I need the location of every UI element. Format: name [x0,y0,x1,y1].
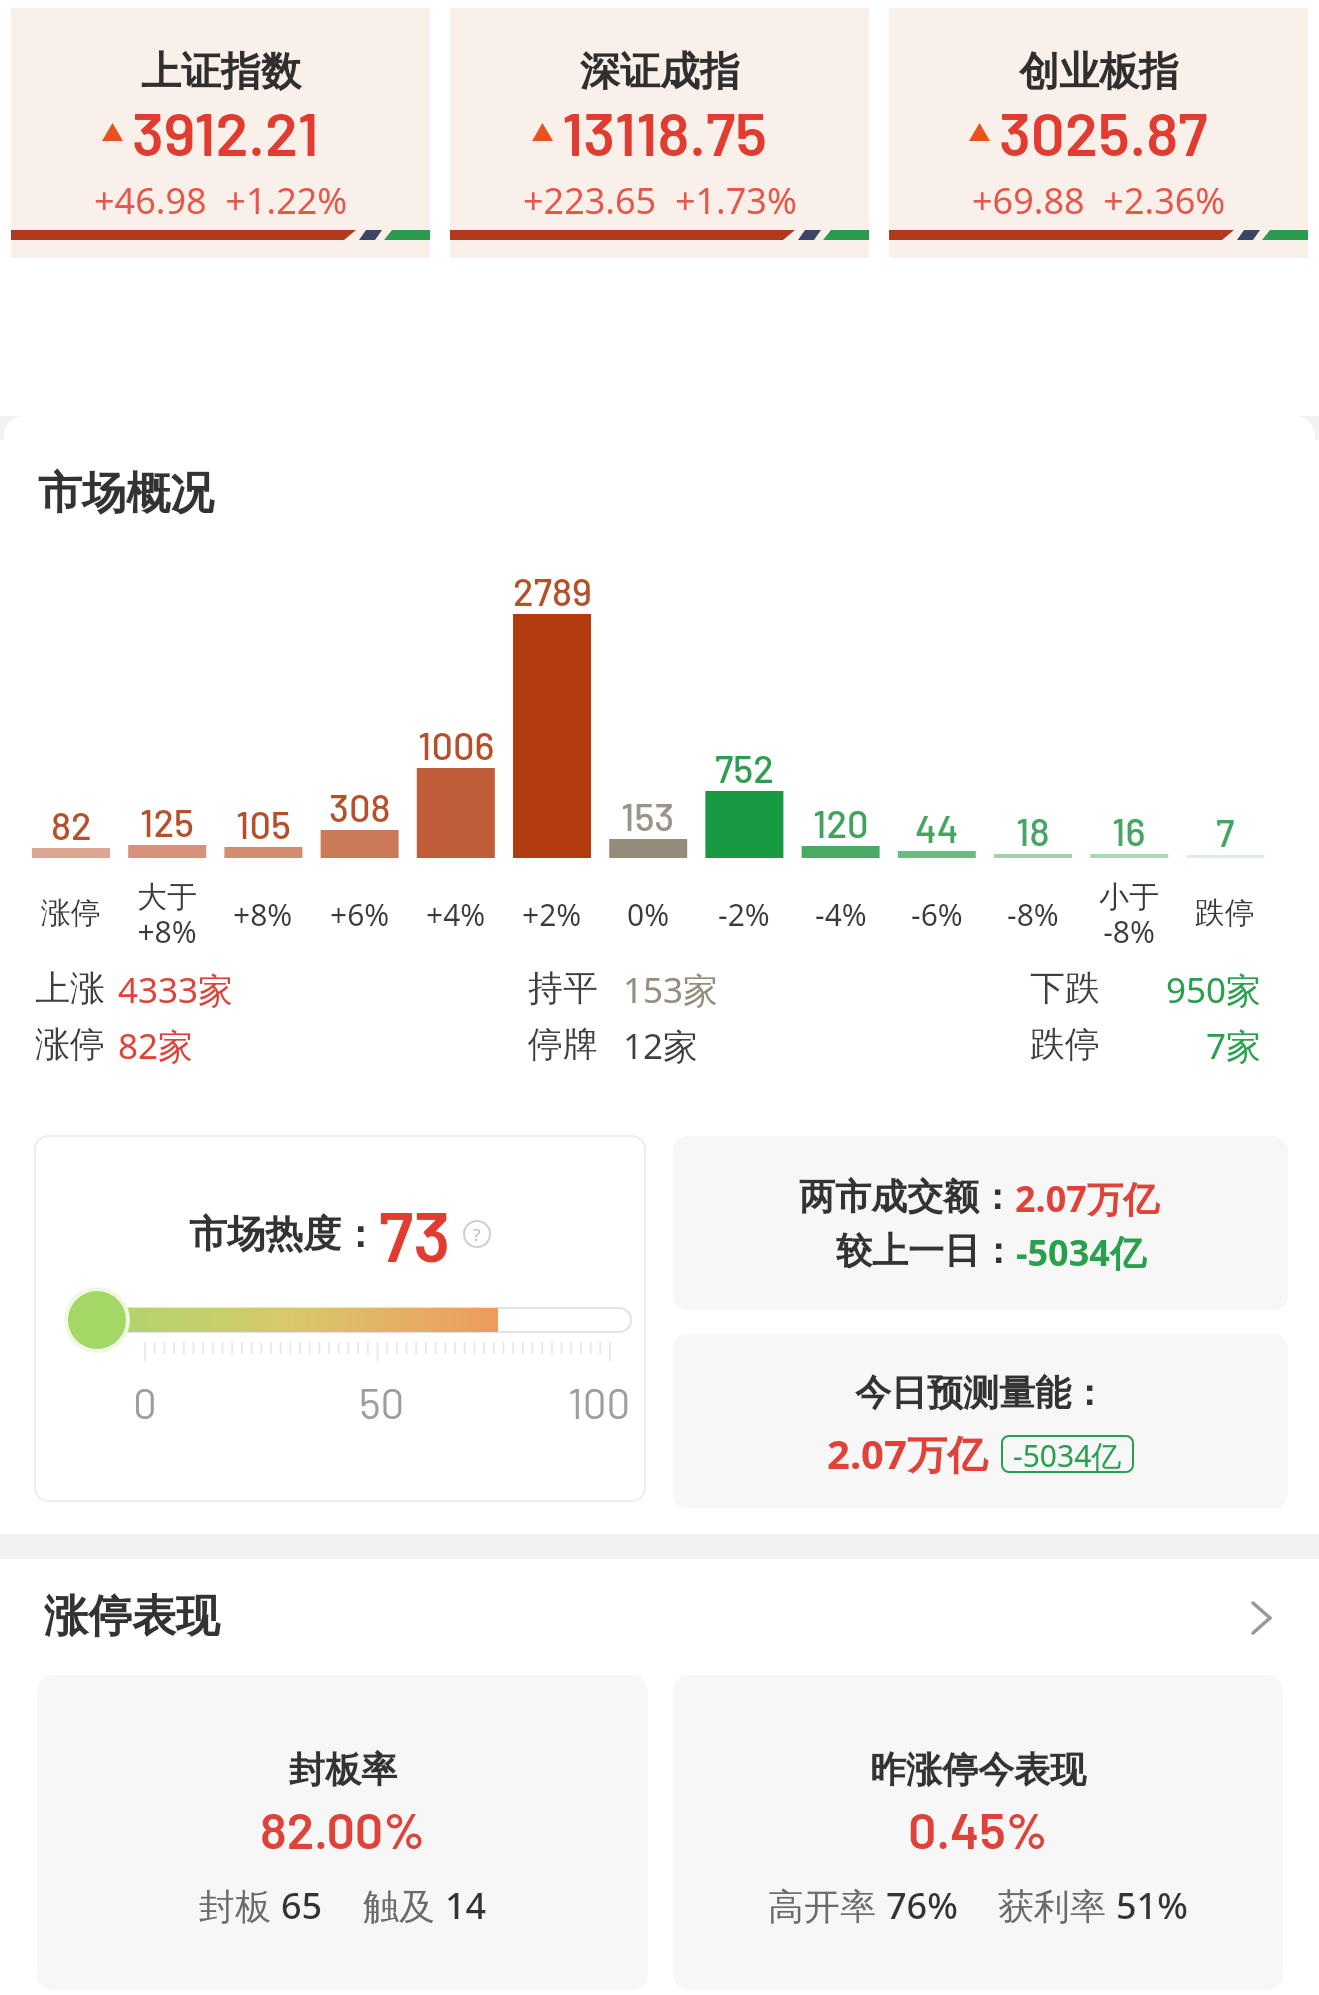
staticText: 752 [715,745,774,791]
staticText: 涨停表现 [44,1589,220,1644]
staticText: 涨停 [41,894,101,932]
staticText: ? [473,1223,481,1246]
staticText: 65 [281,1881,323,1930]
staticText: +4% [426,894,486,935]
staticText: 上涨 [35,966,105,1010]
staticText: 3912.21 [132,96,319,168]
staticText: 昨涨停今表现 [870,1747,1086,1792]
staticText: 125 [140,799,194,845]
staticText: 12家 [623,1022,699,1070]
staticText: 308 [329,784,391,830]
staticText: 2.07万亿 [827,1426,987,1481]
button[interactable]: 深证成指 [450,8,869,258]
button[interactable]: 市场热度： [34,1135,646,1502]
staticText: 小于 -8% [1099,878,1159,952]
staticText: 82 [51,802,92,848]
staticText: 市场概况 [38,466,214,521]
staticText: 深证成指 [580,46,740,96]
staticText: 73 [379,1192,451,1276]
staticText: 14 [445,1881,487,1930]
staticText: -5034亿 [1013,1435,1122,1473]
staticText: 50 [359,1377,405,1427]
staticText: 0.45% [908,1799,1048,1859]
staticText: 105 [236,801,291,847]
staticText: -6% [911,894,963,935]
staticText: 上证指数 [141,46,301,96]
staticText: 0 [133,1377,157,1427]
staticText: 7家 [1206,1022,1262,1070]
staticText: 触及 [363,1881,445,1930]
staticText: 7 [1216,809,1235,855]
staticText: +69.88 +2.36% [972,176,1226,225]
staticText: 今日预测量能： [855,1370,1107,1415]
staticText: 950家 [1166,966,1262,1014]
staticText: 18 [1016,808,1050,854]
staticText: 0% [627,894,670,935]
staticText: 高开率 [768,1881,886,1930]
staticText: 停牌 [528,1022,598,1066]
button[interactable]: 两市成交额： [673,1136,1288,1310]
staticText: +2% [522,894,582,935]
staticText: 较上一日： [836,1228,1016,1273]
button[interactable] [1248,1600,1276,1636]
staticText: 下跌 [1030,966,1100,1010]
staticText: 两市成交额： [799,1174,1015,1219]
staticText: 大于 +8% [137,878,197,952]
staticText: +46.98 +1.22% [94,176,348,225]
staticText: +223.65 +1.73% [523,176,797,225]
staticText: 13118.75 [562,96,767,168]
staticText: -4% [815,894,867,935]
staticText: 跌停 [1195,894,1255,932]
staticText: 2.07万亿 [1015,1174,1159,1223]
staticText: 120 [813,800,869,846]
staticText: 封板率 [289,1747,397,1792]
staticText: 51% [1116,1881,1188,1930]
button[interactable]: 创业板指 [889,8,1308,258]
staticText: 4333家 [118,966,234,1014]
staticText: 16 [1112,808,1146,854]
staticText: 82.00% [260,1799,425,1859]
staticText: 2789 [513,568,592,614]
staticText: 跌停 [1030,1022,1100,1066]
staticText: 76% [886,1881,958,1930]
staticText: -8% [1007,894,1059,935]
staticText: 持平 [528,966,598,1010]
staticText: 100 [568,1377,631,1427]
staticText: 82家 [118,1022,194,1070]
button[interactable]: 上证指数 [11,8,430,258]
staticText: 153家 [623,966,719,1014]
staticText: 涨停 [35,1022,105,1066]
button[interactable]: 今日预测量能： [673,1334,1288,1508]
staticText: 封板 [199,1881,281,1930]
staticText: +6% [330,894,390,935]
staticText: 创业板指 [1019,46,1179,96]
staticText: 市场热度： [189,1210,379,1258]
staticText: -5034亿 [1016,1228,1146,1277]
staticText: 3025.87 [999,96,1208,168]
staticText: 1006 [418,722,495,768]
staticText: 获利率 [998,1881,1116,1930]
staticText: +8% [233,894,293,935]
button[interactable]: 昨涨停今表现 [673,1675,1283,1990]
button[interactable]: 封板率 [37,1675,648,1990]
staticText: -2% [718,894,770,935]
staticText: 153 [621,793,675,839]
staticText: 44 [915,805,959,851]
